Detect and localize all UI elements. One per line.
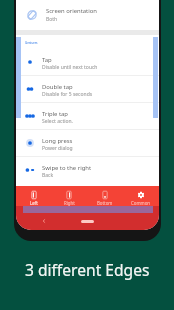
other: Back (41, 218, 47, 224)
staticText: Power dialog (42, 145, 73, 152)
button[interactable]: Bottom (87, 186, 123, 206)
staticText: Common (131, 200, 151, 206)
staticText: Select action. (42, 118, 73, 125)
staticText: Left (30, 200, 38, 206)
staticText: Both (46, 16, 58, 23)
button[interactable]: Left (16, 186, 51, 206)
staticText: 3 different Edges (25, 259, 150, 280)
button[interactable]: Triple tap (16, 103, 159, 129)
button[interactable]: Tap (16, 49, 159, 75)
staticText: Screen orientation (46, 7, 97, 15)
staticText: Gestures (25, 41, 38, 45)
staticText: Swipe to the right (42, 164, 92, 172)
button[interactable]: Long press (16, 130, 159, 156)
staticText: Triple tap (42, 110, 68, 118)
button[interactable]: Right (51, 186, 87, 206)
staticText: Disable until next touch (42, 64, 98, 71)
staticText: Long press (42, 137, 73, 145)
staticText: Double tap (42, 83, 73, 91)
button[interactable]: Swipe to the right (16, 157, 159, 183)
staticText: Back (42, 172, 54, 179)
staticText: Disable for 5 seconds (42, 91, 93, 98)
staticText: Right (64, 200, 75, 206)
staticText: Tap (42, 56, 52, 64)
button[interactable]: Screen orientation (16, 0, 159, 30)
button[interactable]: Double tap (16, 76, 159, 102)
button[interactable]: Common (123, 186, 159, 206)
staticText: Bottom (97, 200, 113, 206)
